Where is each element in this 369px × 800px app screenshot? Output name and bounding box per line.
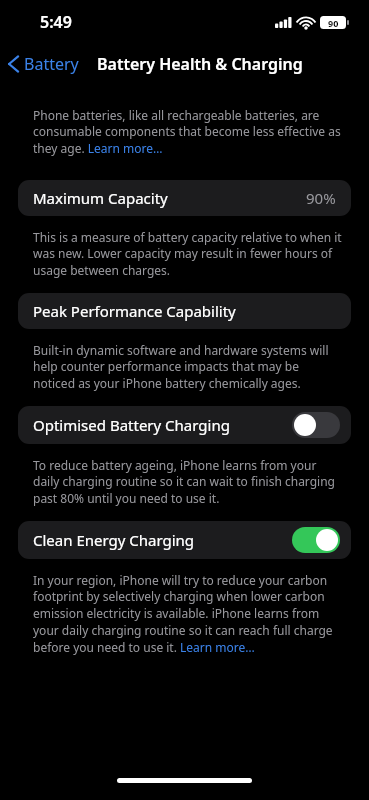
staticText: In your region, iPhone will try to reduc…	[33, 572, 343, 656]
button[interactable]: Clean Energy Charging	[18, 521, 351, 559]
staticText: 5:49	[40, 11, 72, 33]
button[interactable]: Optimised Battery Charging	[18, 406, 351, 444]
staticText: Optimised Battery Charging	[33, 415, 230, 435]
staticText: Built-in dynamic software and hardware s…	[33, 342, 343, 392]
button[interactable]: Battery	[0, 49, 87, 79]
other: Optimised Battery Charging	[292, 412, 340, 438]
staticText: Battery Health & Charging	[97, 53, 303, 75]
staticText: This is a measure of battery capacity re…	[33, 229, 343, 279]
staticText: 90	[328, 17, 339, 29]
staticText: Peak Performance Capability	[33, 301, 236, 321]
other: Clean Energy Charging	[292, 527, 340, 553]
staticText: Phone batteries, like all rechargeable b…	[33, 107, 343, 157]
staticText: Clean Energy Charging	[33, 530, 195, 550]
staticText: 90%	[306, 188, 336, 208]
staticText: Maximum Capacity	[33, 188, 168, 208]
staticText: Battery	[24, 53, 79, 75]
button[interactable]: Peak Performance Capability	[18, 293, 351, 329]
button[interactable]: Maximum Capacity	[18, 180, 351, 216]
staticText: To reduce battery ageing, iPhone learns …	[33, 457, 343, 507]
